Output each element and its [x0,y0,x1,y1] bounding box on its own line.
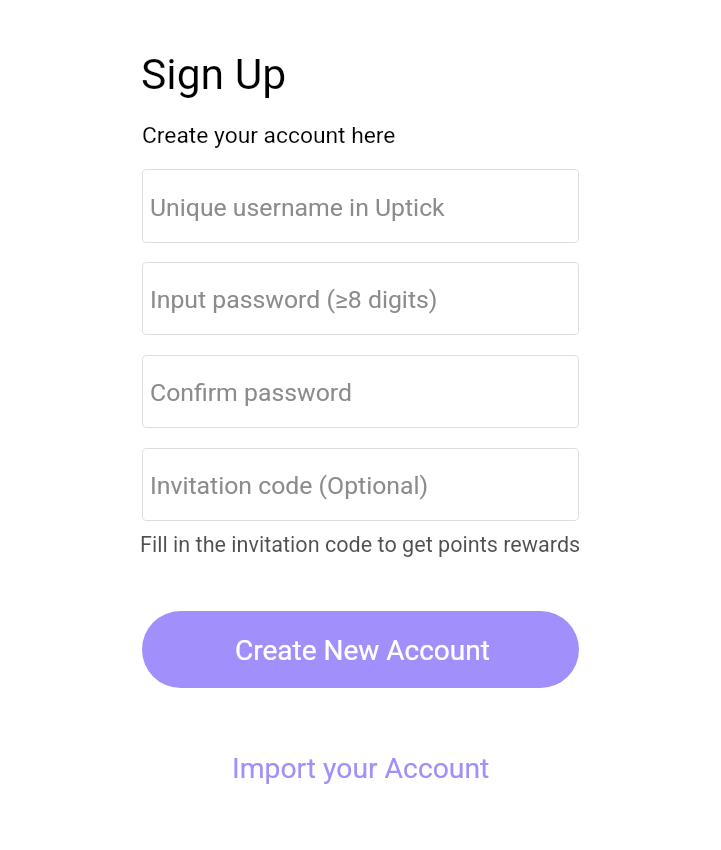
staticText: Create New Account [235,634,490,667]
staticText: Create your account here [142,122,396,149]
staticText: Confirm password [150,378,352,407]
button[interactable]: Input password (≥8 digits) [142,262,579,335]
staticText: Input password (≥8 digits) [150,285,438,314]
staticText: Invitation code (Optional) [150,471,429,500]
button[interactable]: Import your Account [142,748,579,788]
button[interactable]: Confirm password [142,355,579,428]
staticText: Sign Up [141,49,287,99]
button[interactable]: Create New Account [142,611,579,688]
staticText: Fill in the invitation code to get point… [140,532,581,557]
staticText: Import your Account [232,752,490,785]
button[interactable]: Unique username in Uptick [142,169,579,243]
staticText: Unique username in Uptick [150,193,445,222]
button[interactable]: Invitation code (Optional) [142,448,579,521]
